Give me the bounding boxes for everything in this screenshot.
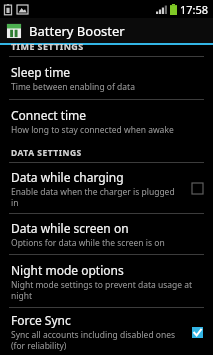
- staticText: Data while screen on: [11, 220, 129, 236]
- staticText: 17:58: [180, 2, 209, 17]
- staticText: Sync all accounts including disabled one…: [11, 329, 183, 351]
- button[interactable]: Connect time: [0, 100, 213, 142]
- button[interactable]: Unchecked: [189, 180, 205, 196]
- staticText: Connect time: [11, 107, 87, 123]
- button[interactable]: Data while screen on: [0, 214, 213, 254]
- staticText: How long to stay connected when awake: [11, 124, 174, 136]
- button[interactable]: Data while charging: [0, 163, 213, 213]
- staticText: Force Sync: [11, 312, 71, 328]
- staticText: Data while charging: [11, 169, 124, 185]
- staticText: DATA SETTINGS: [11, 147, 82, 159]
- staticText: Night mode options: [11, 262, 124, 278]
- staticText: Enable data when the charger is plugged …: [11, 186, 183, 208]
- button[interactable]: Battery Booster: [0, 18, 213, 43]
- staticText: Time between enabling of data: [11, 81, 135, 93]
- staticText: Options for data while the screen is on: [11, 237, 165, 249]
- button[interactable]: Night mode options: [0, 255, 213, 307]
- staticText: Battery Booster: [29, 22, 125, 40]
- button[interactable]: Sleep time: [0, 57, 213, 99]
- staticText: Sleep time: [11, 64, 71, 80]
- button[interactable]: Force Sync: [0, 308, 213, 355]
- staticText: TIME SETTINGS: [11, 40, 84, 51]
- button[interactable]: Checked: [189, 324, 205, 340]
- staticText: Night mode settings to prevent data usag…: [11, 279, 205, 301]
